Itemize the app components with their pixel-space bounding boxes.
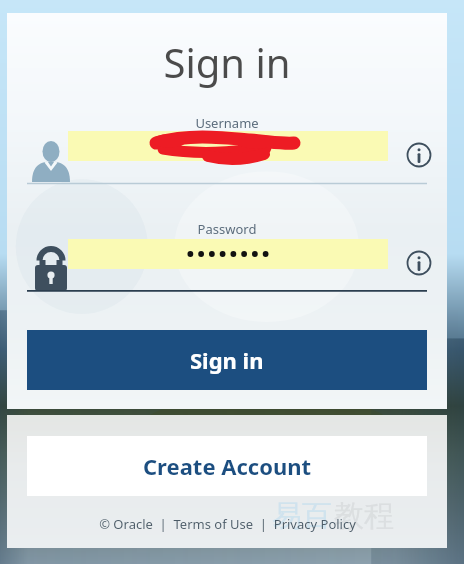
staticText: Password	[7, 220, 447, 238]
staticText: Create Account	[143, 451, 312, 481]
button[interactable]: Create Account	[27, 436, 427, 496]
button[interactable]: Password	[29, 244, 73, 292]
staticText: .com	[187, 135, 270, 157]
button[interactable]: Sign in	[27, 330, 427, 390]
staticText: 教程	[334, 497, 394, 535]
button[interactable]: © Oracle | Terms of Use | Privacy Policy	[99, 515, 356, 533]
button[interactable]	[68, 239, 388, 269]
button[interactable]: Information	[400, 136, 438, 174]
staticText: Sign in	[7, 35, 447, 89]
button[interactable]: User	[28, 136, 74, 182]
staticText: Sign in	[190, 345, 264, 375]
staticText: © Oracle | Terms of Use | Privacy Policy	[99, 515, 356, 533]
staticText: Username	[7, 114, 447, 132]
button[interactable]: .com	[68, 131, 388, 161]
staticText: 易百	[272, 497, 332, 535]
button[interactable]: Information	[400, 244, 438, 282]
